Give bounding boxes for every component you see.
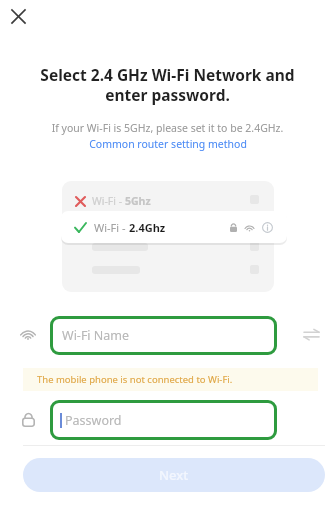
staticText: Password [65,412,122,429]
staticText: Next [159,466,189,484]
staticText: Select 2.4 GHz Wi-Fi Network and enter p… [18,64,317,106]
staticText: If your Wi-Fi is 5GHz, please set it to … [14,121,321,135]
staticText: 2.4Ghz [129,220,166,235]
staticText: Wi-Fi - [94,220,129,235]
staticText: Wi-Fi - [92,194,125,208]
button[interactable]: Wi-Fi Name [50,316,277,355]
staticText: Common router setting method [89,137,247,151]
staticText: 5Ghz [125,194,151,208]
staticText: Wi-Fi Name [62,327,130,344]
button[interactable]: Password [50,400,277,440]
staticText: The mobile phone is not connected to Wi-… [37,373,233,386]
other: Wi-Fi [16,322,40,346]
button[interactable]: Switch network [299,322,323,346]
button[interactable]: Wi-Fi - [61,211,287,243]
button[interactable]: Close [5,3,31,29]
button[interactable]: Next [23,458,325,492]
other: Password [16,407,40,431]
button[interactable]: Common router setting method [83,136,253,152]
